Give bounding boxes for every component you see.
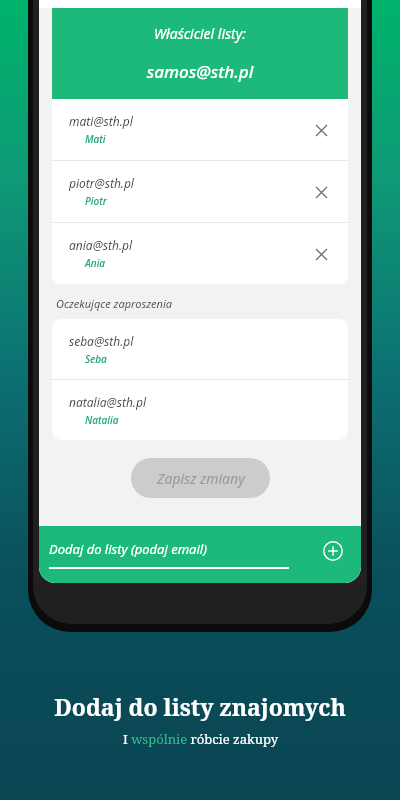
button[interactable]: Zapisz zmiany xyxy=(131,458,270,498)
button[interactable]: seba@sth.pl xyxy=(52,319,348,379)
staticText: Dodaj do listy (podaj email) xyxy=(49,540,207,558)
button[interactable]: Usuń Mati xyxy=(308,117,334,143)
staticText: mati@sth.pl xyxy=(69,113,133,129)
staticText: Zapisz zmiany xyxy=(157,469,245,488)
button[interactable]: natalia@sth.pl xyxy=(52,380,348,440)
staticText: Dodaj do listy znajomych xyxy=(54,691,346,722)
button[interactable]: Dodaj xyxy=(318,536,348,566)
staticText: natalia@sth.pl xyxy=(69,394,146,410)
button[interactable]: ania@sth.pl xyxy=(52,223,348,284)
staticText: Oczekujące zaproszenia xyxy=(56,296,172,311)
staticText: samos@sth.pl xyxy=(52,60,348,83)
staticText: Mati xyxy=(85,132,106,146)
staticText: seba@sth.pl xyxy=(69,333,134,349)
staticText: Właściciel listy: xyxy=(52,24,348,43)
staticText: Ania xyxy=(85,256,106,270)
staticText: Seba xyxy=(85,352,107,366)
staticText: piotr@sth.pl xyxy=(69,175,134,191)
button[interactable]: Usuń Ania xyxy=(308,241,334,267)
button[interactable]: Usuń Piotr xyxy=(308,179,334,205)
button[interactable]: piotr@sth.pl xyxy=(52,161,348,222)
staticText: I wspólnie róbcie zakupy xyxy=(123,730,278,748)
staticText: Natalia xyxy=(85,413,119,427)
staticText: Piotr xyxy=(85,194,107,208)
button[interactable]: mati@sth.pl xyxy=(52,99,348,160)
staticText: ania@sth.pl xyxy=(69,237,133,253)
